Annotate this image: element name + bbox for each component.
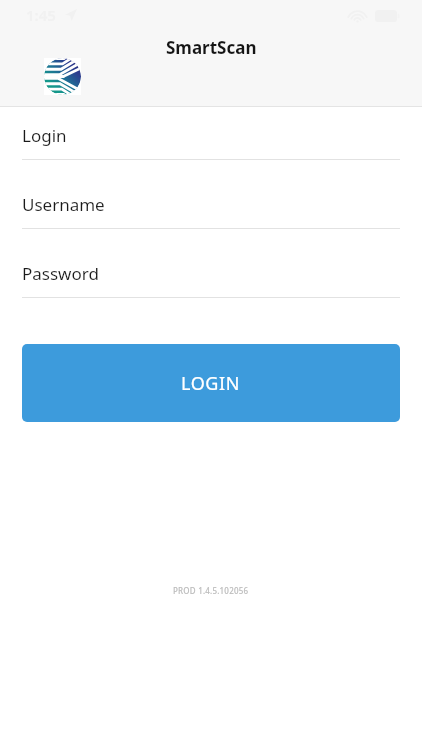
staticText: Username — [22, 193, 105, 216]
button[interactable]: Password — [0, 260, 422, 298]
staticText: SmartScan — [166, 36, 257, 59]
staticText: LOGIN — [181, 371, 241, 396]
other: App logo — [44, 58, 81, 95]
staticText: Password — [22, 262, 99, 285]
button[interactable]: Username — [0, 191, 422, 229]
staticText: PROD 1.4.5.102056 — [173, 585, 249, 596]
button[interactable]: LOGIN — [22, 344, 400, 422]
button[interactable]: Login — [0, 122, 422, 160]
staticText: Login — [22, 124, 67, 147]
